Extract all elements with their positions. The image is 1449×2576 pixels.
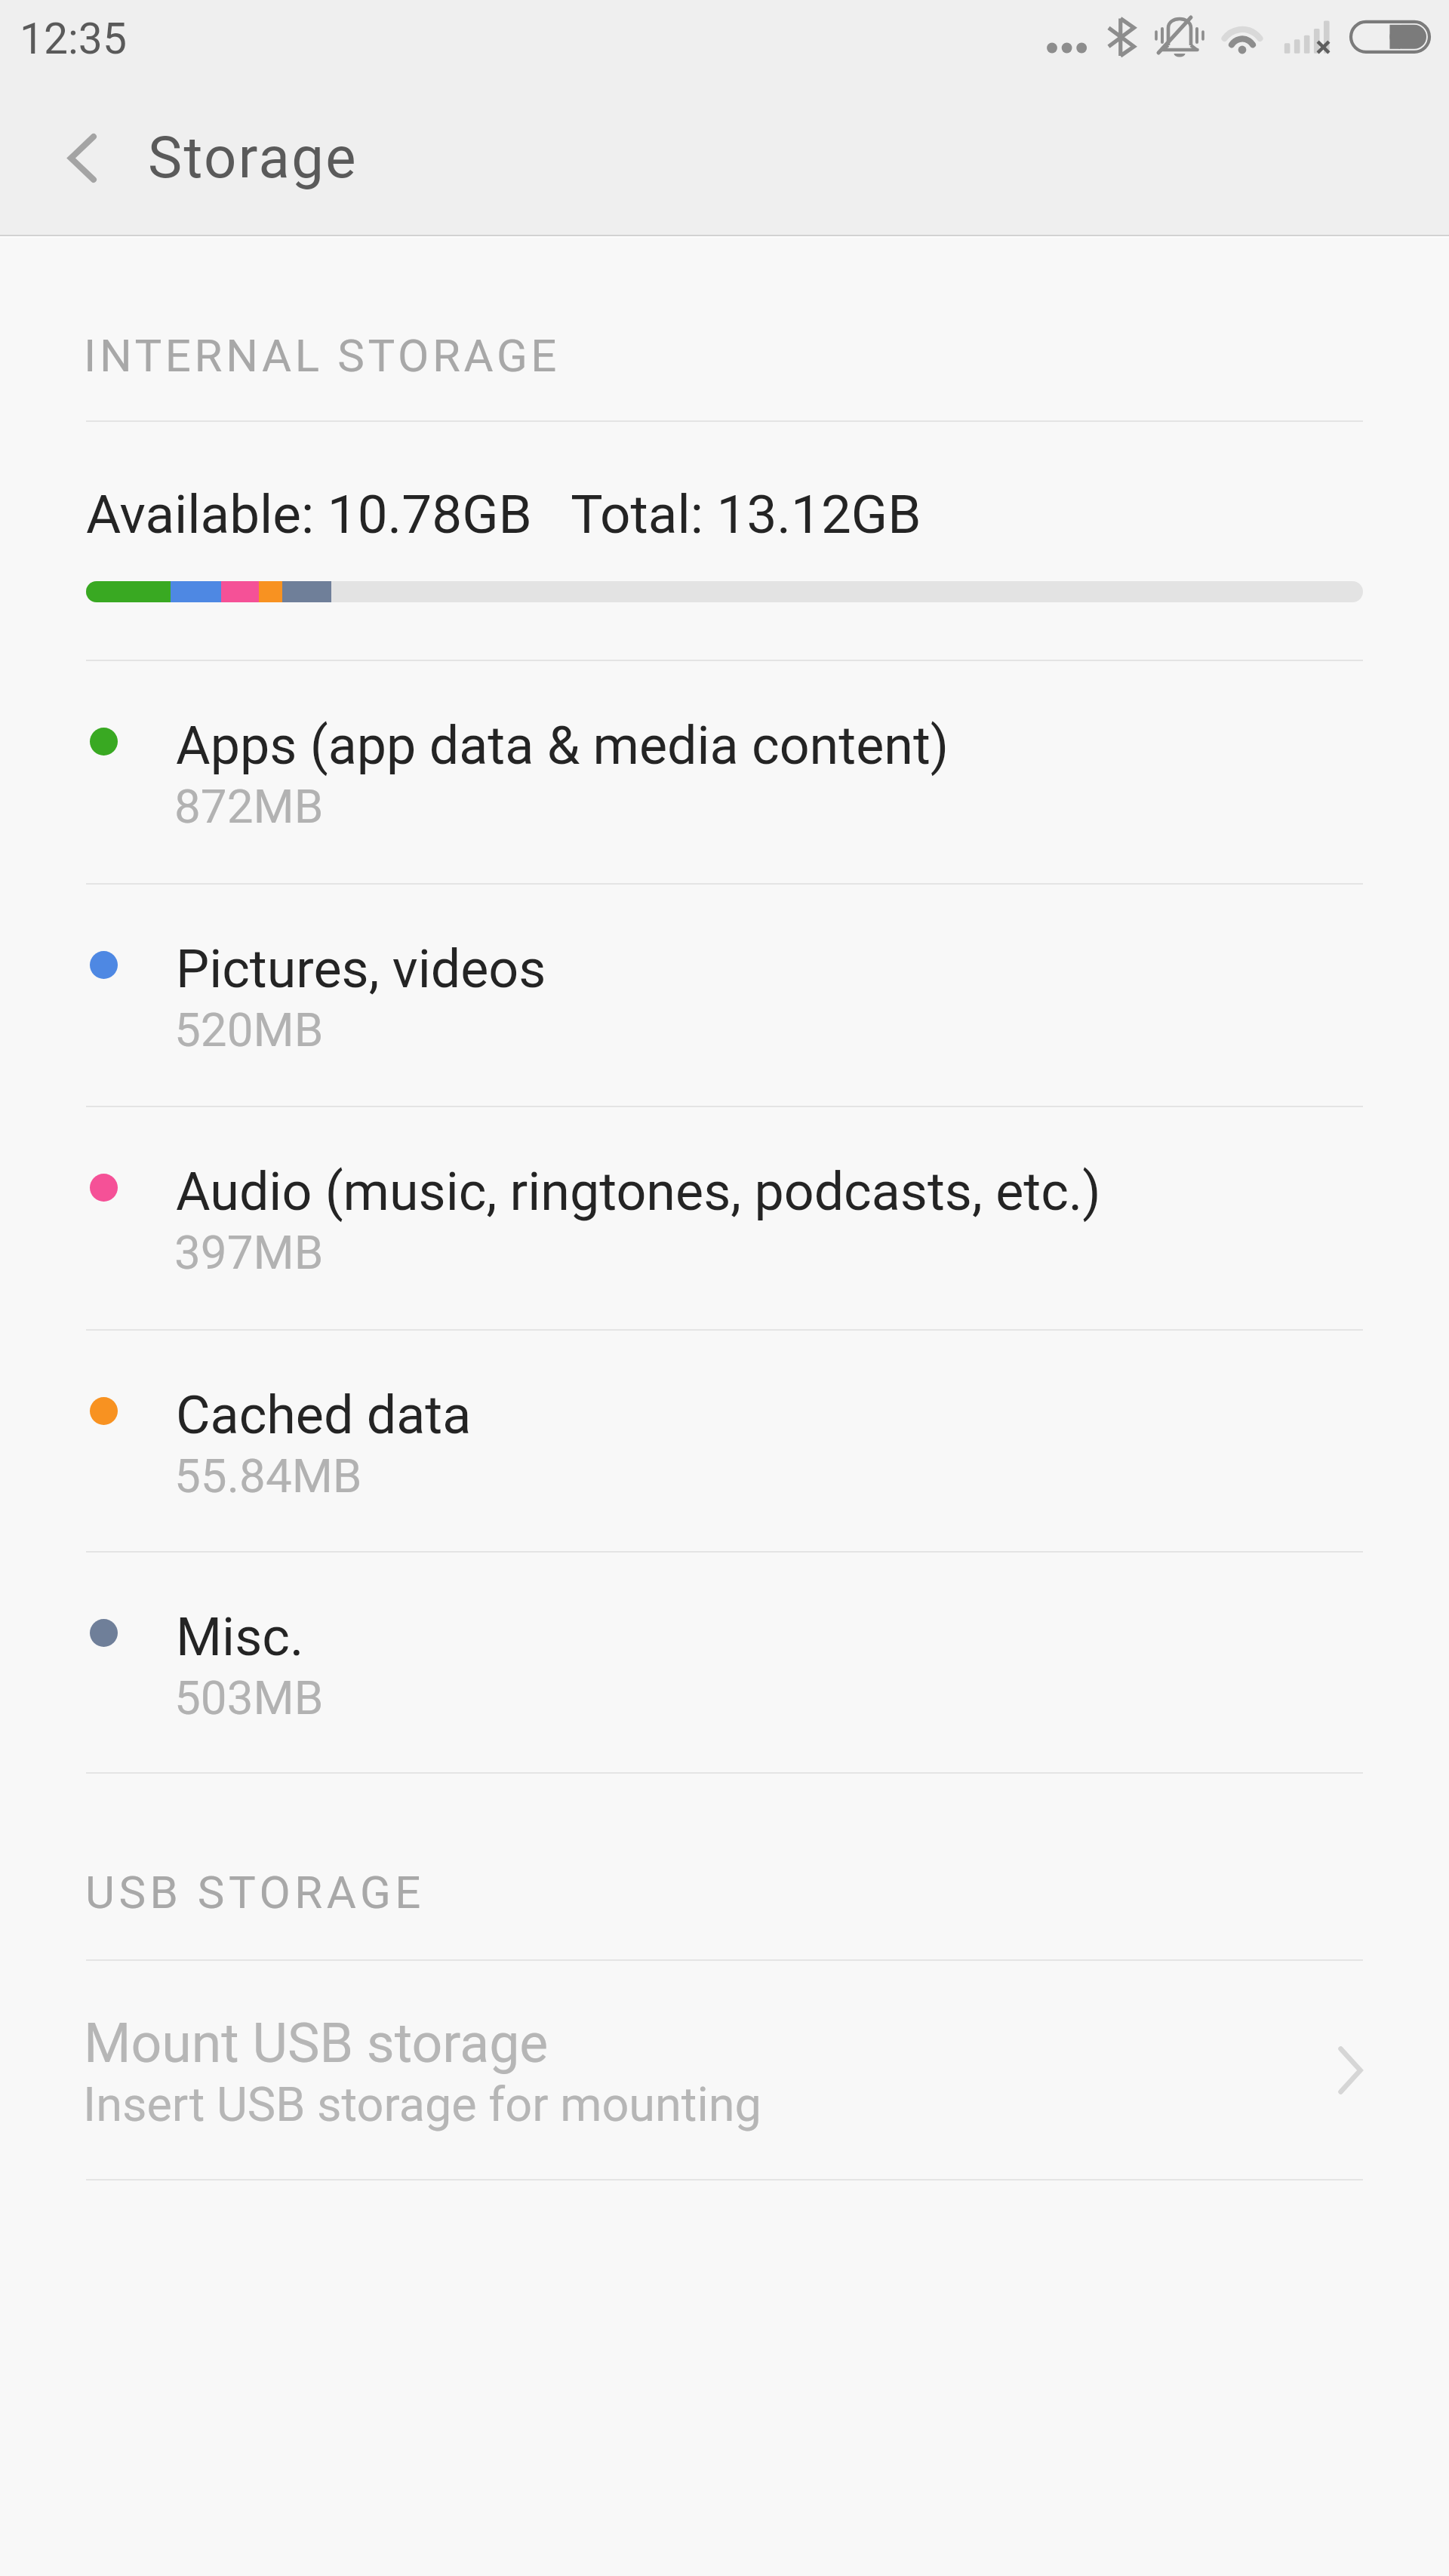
staticText: Insert USB storage for mounting — [83, 2077, 761, 2133]
staticText: 503MB — [174, 1670, 324, 1725]
staticText: Cached data — [176, 1384, 472, 1446]
staticText: 12:35 — [20, 14, 127, 64]
staticText: USB STORAGE — [85, 1866, 425, 1919]
staticText: Storage — [148, 124, 358, 191]
staticText: Apps (app data & media content) — [176, 715, 949, 777]
staticText: Misc. — [176, 1606, 304, 1668]
staticText: Audio (music, ringtones, podcasts, etc.) — [176, 1161, 1101, 1223]
staticText: Available: 10.78GB Total: 13.12GB — [86, 483, 921, 546]
staticText: 397MB — [174, 1225, 324, 1280]
staticText: 872MB — [174, 779, 324, 834]
staticText: Pictures, videos — [176, 938, 546, 1000]
staticText: Mount USB storage — [84, 2012, 549, 2076]
staticText: INTERNAL STORAGE — [84, 329, 561, 382]
button[interactable]: Audio (music, ringtones, podcasts, etc.) — [0, 1105, 1449, 1328]
button[interactable]: Back — [22, 82, 143, 235]
button[interactable]: Apps (app data & media content) — [0, 659, 1449, 882]
button[interactable]: Mount USB storage — [0, 1960, 1449, 2178]
staticText: 520MB — [174, 1002, 324, 1057]
button[interactable]: Misc. — [0, 1550, 1449, 1771]
button[interactable]: Cached data — [0, 1328, 1449, 1550]
staticText: 55.84MB — [174, 1448, 362, 1503]
button[interactable]: Pictures, videos — [0, 882, 1449, 1105]
